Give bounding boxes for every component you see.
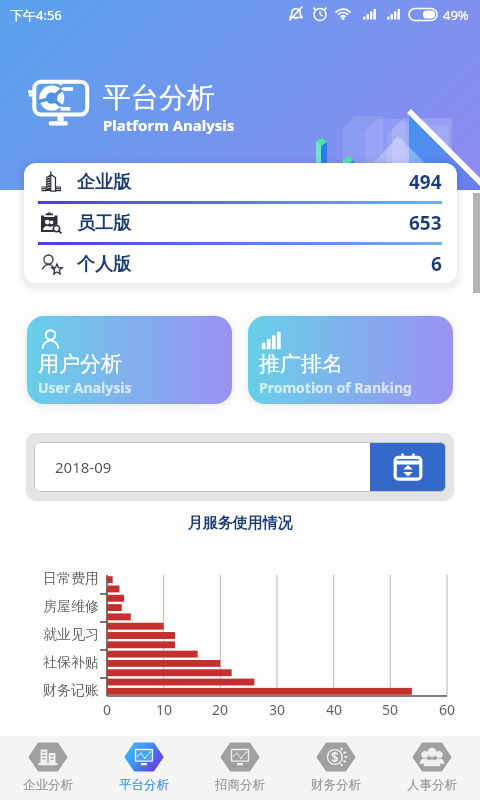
staticText: 平台分析: [119, 777, 169, 793]
other: Pick month: [370, 442, 446, 492]
staticText: 社保补贴: [43, 654, 99, 672]
staticText: 员工版: [77, 212, 131, 235]
staticText: 企业分析: [23, 777, 73, 793]
staticText: 企业版: [77, 171, 131, 194]
button[interactable]: 招商分析: [192, 736, 288, 800]
button[interactable]: 员工版: [24, 204, 457, 242]
button[interactable]: 财务分析: [288, 736, 384, 800]
button[interactable]: 企业版: [24, 163, 457, 201]
button[interactable]: 用户分析: [27, 316, 232, 404]
staticText: 房屋维修: [43, 598, 99, 616]
staticText: 人事分析: [407, 777, 457, 793]
staticText: 653: [409, 210, 442, 236]
staticText: 日常费用: [43, 570, 99, 588]
staticText: Promotion of Ranking: [259, 378, 412, 397]
staticText: 10: [156, 700, 173, 718]
staticText: 0: [103, 700, 112, 718]
staticText: 494: [409, 169, 442, 195]
staticText: 平台分析: [103, 80, 215, 115]
staticText: 50: [382, 700, 399, 718]
staticText: 用户分析: [38, 351, 122, 377]
button[interactable]: 2018-09: [34, 442, 446, 492]
button[interactable]: 平台分析: [96, 736, 192, 800]
button[interactable]: 推广排名: [248, 316, 453, 404]
staticText: 就业见习: [43, 626, 99, 644]
staticText: 60: [439, 700, 456, 718]
staticText: 财务分析: [311, 777, 361, 793]
staticText: 个人版: [77, 253, 131, 276]
staticText: 20: [212, 700, 229, 718]
staticText: 推广排名: [259, 351, 343, 377]
button[interactable]: 企业分析: [0, 736, 96, 800]
staticText: Platform Analysis: [103, 115, 235, 135]
staticText: 30: [269, 700, 286, 718]
button[interactable]: 人事分析: [384, 736, 480, 800]
staticText: 财务记账: [43, 682, 99, 700]
button[interactable]: 个人版: [24, 245, 457, 283]
staticText: 49%: [443, 6, 469, 24]
staticText: 40: [326, 700, 343, 718]
staticText: 下午4:56: [10, 6, 62, 24]
staticText: 2018-09: [55, 457, 370, 477]
staticText: 月服务使用情况: [0, 514, 480, 533]
staticText: 6: [431, 251, 442, 277]
staticText: 招商分析: [215, 777, 265, 793]
staticText: User Analysis: [38, 378, 132, 397]
